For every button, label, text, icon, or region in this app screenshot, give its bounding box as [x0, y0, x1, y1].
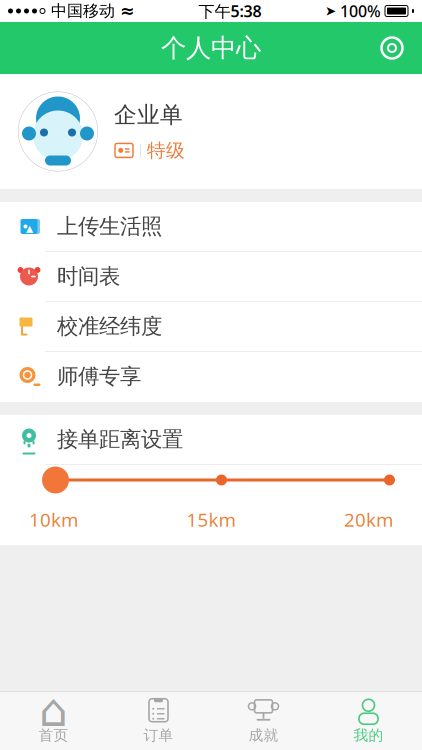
button[interactable]: 成就 [211, 692, 316, 750]
staticText: ⌂ [39, 684, 68, 736]
button[interactable]: 师傅专享 [0, 352, 422, 402]
staticText: 校准经纬度 [57, 313, 162, 340]
staticText: 成就 [248, 726, 278, 744]
staticText: 100% [340, 0, 381, 22]
staticText: 20km [344, 507, 393, 532]
button[interactable]: 接单距离设置 [0, 415, 422, 465]
staticText: 上传生活照 [57, 213, 162, 240]
staticText: 我的 [353, 726, 383, 744]
staticText: 10km [29, 507, 78, 532]
staticText: 企业单 [114, 101, 183, 129]
button[interactable]: 订单 [106, 692, 211, 750]
staticText: 下午5:38 [198, 0, 261, 22]
staticText: 师傅专享 [57, 363, 141, 390]
button[interactable]: 校准经纬度 [0, 302, 422, 352]
staticText: 特级 [147, 139, 185, 162]
staticText: 个人中心 [161, 32, 261, 63]
button[interactable]: 时间表 [0, 252, 422, 302]
button[interactable]: Settings [370, 26, 414, 70]
staticText: ≈ [120, 1, 135, 21]
staticText: 中国移动 [51, 1, 115, 21]
button[interactable]: ⌂ [1, 692, 106, 750]
staticText: ▲ [26, 223, 33, 234]
staticText: 首页 [38, 726, 68, 744]
button[interactable]: 企业单 [0, 74, 422, 189]
staticText: 接单距离设置 [57, 426, 183, 453]
staticText: 订单 [143, 726, 173, 744]
staticText: 时间表 [57, 263, 120, 290]
button[interactable]: 我的 [316, 692, 421, 750]
button[interactable]: ▲ [0, 202, 422, 252]
staticText: ➤ [325, 3, 336, 18]
staticText: 15km [186, 507, 235, 532]
